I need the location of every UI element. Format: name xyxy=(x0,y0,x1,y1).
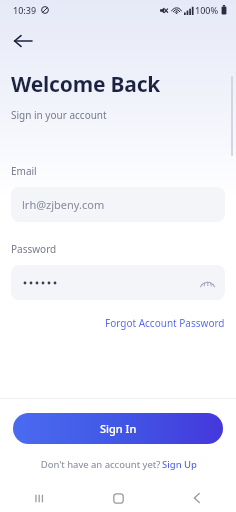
staticText: Sign in your account xyxy=(11,108,107,122)
button[interactable]: Show password xyxy=(11,265,225,300)
button[interactable]: Sign Up xyxy=(162,458,198,471)
button[interactable]: Sign In xyxy=(13,413,223,444)
button[interactable]: Forgot Account Password xyxy=(105,314,225,332)
staticText: 100% xyxy=(195,4,219,16)
button[interactable]: Recent apps xyxy=(26,485,52,511)
button[interactable]: Show password xyxy=(196,272,218,294)
button[interactable]: Back xyxy=(184,485,210,511)
staticText: 10:39 xyxy=(13,4,37,16)
button[interactable]: Back xyxy=(6,24,40,58)
staticText: Don't have an account yet? xyxy=(39,458,162,471)
staticText: Password xyxy=(11,242,57,256)
button[interactable]: lrh@zjbeny.com xyxy=(11,187,225,222)
staticText: Email xyxy=(11,164,37,178)
staticText: Sign In xyxy=(100,421,137,436)
button[interactable]: Home xyxy=(105,485,131,511)
staticText: lrh@zjbeny.com xyxy=(22,197,105,212)
staticText: Welcome Back xyxy=(11,70,161,99)
